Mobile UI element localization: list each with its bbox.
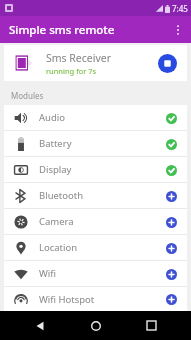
button[interactable]: Battery enabled [160,133,182,155]
button[interactable]: Stop service [152,48,182,78]
staticText: Sms Receiver [46,51,112,65]
staticText: Camera [39,215,74,228]
staticText: Audio [39,111,65,124]
button[interactable]: Display [4,157,187,182]
button[interactable]: Audio enabled [160,107,182,129]
staticText: Wifi Hotspot [39,293,95,306]
button[interactable]: Bluetooth [4,183,187,208]
button[interactable]: Battery [4,131,187,156]
button[interactable]: Back [25,311,55,340]
button[interactable]: Home [81,311,111,340]
staticText: running for 7s [46,66,97,76]
button[interactable]: Add Camera [160,211,182,233]
button[interactable]: Display enabled [160,159,182,181]
button[interactable]: More options [165,17,191,43]
button[interactable]: Sms Receiver [4,45,187,81]
button[interactable]: Location [4,235,187,260]
staticText: Modules [11,90,44,101]
button[interactable]: Audio [4,105,187,130]
staticText: Location [39,241,78,254]
button[interactable]: Camera [4,209,187,234]
staticText: Battery [39,137,72,150]
button[interactable]: Add Location [160,237,182,259]
staticText: Wifi [39,267,57,280]
staticText: 7:45 [172,3,188,14]
button[interactable]: Wifi Hotspot [4,287,187,311]
staticText: Display [39,163,72,176]
button[interactable]: Add Wifi [160,263,182,285]
button[interactable]: Add Bluetooth [160,185,182,207]
button[interactable]: Wifi [4,261,187,286]
button[interactable]: Add Wifi Hotspot [160,288,182,310]
button[interactable]: Recent apps [136,311,166,340]
staticText: Simple sms remote [9,22,115,38]
staticText: Bluetooth [39,189,84,202]
